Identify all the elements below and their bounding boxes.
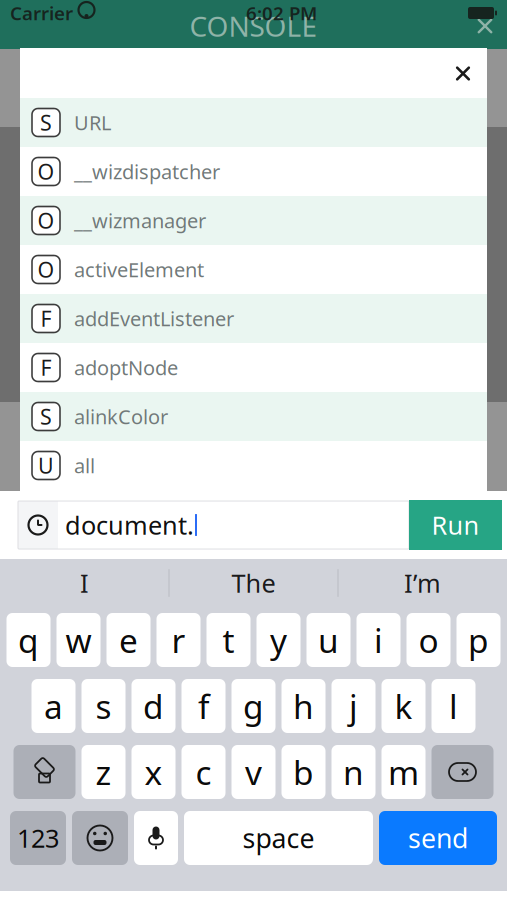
button[interactable]: f xyxy=(181,679,225,733)
staticText: space xyxy=(242,820,314,856)
button[interactable]: y xyxy=(256,613,300,667)
staticText: I xyxy=(80,566,89,600)
staticText: y xyxy=(270,618,287,662)
staticText: U xyxy=(38,451,54,480)
button[interactable]: q xyxy=(6,613,50,667)
button[interactable]: F xyxy=(20,294,487,343)
staticText: c xyxy=(195,750,211,794)
staticText: w xyxy=(65,618,91,662)
button[interactable]: Dictation xyxy=(134,811,178,865)
staticText: O xyxy=(37,157,54,186)
staticText: URL xyxy=(74,109,111,136)
staticText: r xyxy=(171,618,185,662)
staticText: S xyxy=(40,108,52,137)
button[interactable]: Emoji xyxy=(72,811,128,865)
button[interactable]: h xyxy=(281,679,325,733)
button[interactable]: m xyxy=(381,745,425,799)
button[interactable]: O xyxy=(20,196,487,245)
staticText: i xyxy=(374,618,383,662)
staticText: __wizdispatcher xyxy=(74,158,220,185)
button[interactable]: w xyxy=(56,613,100,667)
staticText: o xyxy=(418,618,438,662)
staticText: m xyxy=(388,750,419,794)
staticText: t xyxy=(222,618,234,662)
staticText: z xyxy=(95,750,111,794)
staticText: g xyxy=(243,684,264,728)
button[interactable]: F xyxy=(20,343,487,392)
button[interactable]: Dismiss suggestions xyxy=(439,49,487,97)
staticText: __wizmanager xyxy=(74,207,206,234)
button[interactable]: d xyxy=(131,679,175,733)
staticText: O xyxy=(37,255,54,284)
staticText: q xyxy=(18,618,39,662)
button[interactable]: 123 xyxy=(10,811,66,865)
button[interactable]: i xyxy=(356,613,400,667)
staticText: d xyxy=(143,684,164,728)
staticText: all xyxy=(74,452,95,479)
staticText: v xyxy=(245,750,262,794)
button[interactable]: n xyxy=(331,745,375,799)
button[interactable]: x xyxy=(131,745,175,799)
staticText: e xyxy=(119,618,138,662)
button[interactable]: j xyxy=(331,679,375,733)
button[interactable]: c xyxy=(181,745,225,799)
staticText: adoptNode xyxy=(74,354,178,381)
button[interactable]: k xyxy=(381,679,425,733)
button[interactable]: r xyxy=(156,613,200,667)
staticText: CONSOLE xyxy=(189,7,317,45)
button[interactable]: o xyxy=(406,613,450,667)
staticText: 6:02 PM xyxy=(246,1,317,25)
staticText: Run xyxy=(431,508,479,542)
button[interactable]: b xyxy=(281,745,325,799)
button[interactable]: The xyxy=(169,561,337,605)
button[interactable]: Run xyxy=(409,500,502,550)
staticText: x xyxy=(144,750,162,794)
button[interactable]: g xyxy=(231,679,275,733)
staticText: j xyxy=(349,684,358,728)
button[interactable]: S xyxy=(20,98,487,147)
button[interactable]: I xyxy=(0,561,168,605)
staticText: document. xyxy=(65,508,194,542)
staticText: f xyxy=(198,684,209,728)
button[interactable]: t xyxy=(206,613,250,667)
staticText: The xyxy=(231,566,275,600)
staticText: F xyxy=(40,353,51,382)
staticText: k xyxy=(394,684,412,728)
button[interactable]: U xyxy=(20,441,487,490)
button[interactable]: l xyxy=(431,679,475,733)
button[interactable]: I’m xyxy=(338,561,506,605)
button[interactable]: space xyxy=(184,811,373,865)
staticText: p xyxy=(468,618,489,662)
button[interactable]: History xyxy=(18,501,58,549)
staticText: I’m xyxy=(404,566,441,600)
staticText: h xyxy=(293,684,314,728)
button[interactable]: Delete xyxy=(431,745,493,799)
button[interactable]: z xyxy=(81,745,125,799)
button[interactable]: p xyxy=(456,613,500,667)
staticText: activeElement xyxy=(74,256,204,283)
staticText: O xyxy=(37,206,54,235)
button[interactable]: O xyxy=(20,147,487,196)
staticText: Carrier xyxy=(10,1,73,25)
staticText: send xyxy=(408,820,468,856)
staticText: b xyxy=(293,750,314,794)
staticText: a xyxy=(44,684,63,728)
button[interactable]: s xyxy=(81,679,125,733)
staticText: l xyxy=(449,684,458,728)
button[interactable]: send xyxy=(379,811,497,865)
button[interactable]: v xyxy=(231,745,275,799)
button[interactable]: Shift xyxy=(13,745,75,799)
button[interactable]: e xyxy=(106,613,150,667)
staticText: F xyxy=(40,304,51,333)
staticText: s xyxy=(95,684,111,728)
button[interactable]: a xyxy=(31,679,75,733)
staticText: S xyxy=(40,402,52,431)
button[interactable]: S xyxy=(20,392,487,441)
staticText: alinkColor xyxy=(74,403,168,430)
staticText: 123 xyxy=(17,821,59,855)
button[interactable]: O xyxy=(20,245,487,294)
staticText: n xyxy=(343,750,364,794)
button[interactable]: Close console xyxy=(463,4,507,48)
staticText: addEventListener xyxy=(74,305,234,332)
button[interactable]: u xyxy=(306,613,350,667)
